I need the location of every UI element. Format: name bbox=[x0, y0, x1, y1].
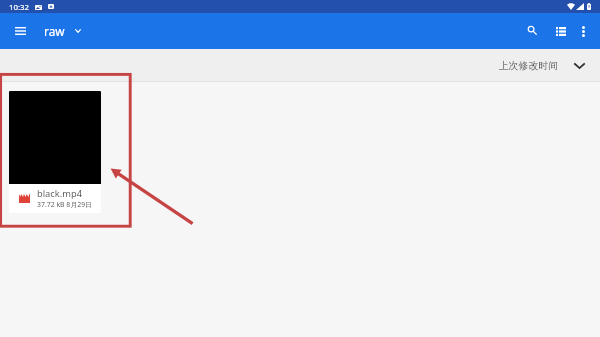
button[interactable]: 上次修改时间 bbox=[499, 60, 585, 72]
button[interactable]: Navigation menu bbox=[8, 13, 33, 49]
staticText: black.mp4 bbox=[37, 187, 82, 200]
staticText: raw bbox=[44, 23, 65, 39]
button[interactable]: Switch view bbox=[547, 13, 574, 49]
staticText: 37.72 kB 8月29日 bbox=[37, 200, 92, 209]
button[interactable]: raw bbox=[44, 13, 81, 49]
button[interactable]: Search bbox=[519, 13, 546, 49]
button[interactable]: black.mp4 bbox=[9, 91, 101, 213]
staticText: 上次修改时间 bbox=[499, 60, 558, 72]
button[interactable]: More options bbox=[571, 13, 595, 49]
staticText: 10:32 bbox=[9, 2, 29, 13]
